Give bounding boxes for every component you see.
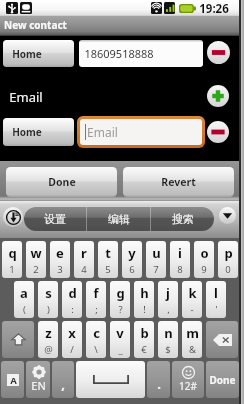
button[interactable]: Home: [3, 118, 74, 146]
button[interactable]: g: [110, 281, 130, 318]
button[interactable]: Done: [6, 167, 117, 197]
staticText: a: [20, 284, 28, 302]
staticText: !: [143, 303, 146, 316]
button[interactable]: Add email field: [207, 85, 229, 107]
staticText: :: [71, 303, 74, 316]
staticText: 1: [9, 263, 15, 276]
staticText: d: [68, 284, 77, 302]
button[interactable]: m: [182, 321, 202, 358]
button[interactable]: e: [50, 241, 70, 278]
staticText: ?: [118, 303, 123, 316]
button[interactable]: x: [62, 321, 82, 358]
button[interactable]: 18609518888: [79, 40, 203, 67]
staticText: s: [45, 284, 52, 302]
staticText: h: [140, 284, 149, 302]
staticText: t: [105, 244, 111, 262]
staticText: 19:26: [199, 1, 229, 17]
staticText: -: [190, 303, 194, 316]
button[interactable]: h: [134, 281, 154, 318]
button[interactable]: u: [146, 241, 166, 278]
button[interactable]: k: [182, 281, 202, 318]
button[interactable]: v: [110, 321, 130, 358]
staticText: g: [116, 284, 125, 302]
staticText: c: [93, 324, 100, 342]
button[interactable]: Done: [206, 361, 239, 398]
button[interactable]: [206, 321, 238, 358]
staticText: z: [45, 324, 52, 342]
button[interactable]: b: [134, 321, 154, 358]
button[interactable]: Hide keyboard: [3, 207, 23, 227]
staticText: ;: [95, 303, 98, 316]
staticText: 编辑: [108, 212, 130, 226]
button[interactable]: Email: [80, 119, 202, 145]
staticText: 18609518888: [84, 46, 154, 61]
button[interactable]: o: [194, 241, 214, 278]
button[interactable]: i: [170, 241, 190, 278]
staticText: ,: [61, 375, 65, 393]
button[interactable]: Home: [3, 40, 74, 67]
staticText: e: [56, 244, 64, 262]
button[interactable]: p: [218, 241, 238, 278]
staticText: x: [68, 324, 76, 342]
button[interactable]: w: [26, 241, 46, 278]
staticText: 搜索: [172, 212, 194, 226]
staticText: u: [152, 244, 161, 262]
button[interactable]: Remove field: [207, 41, 230, 64]
button[interactable]: ,: [52, 361, 74, 398]
staticText: 8: [177, 263, 183, 276]
staticText: ': [215, 303, 218, 316]
staticText: Email: [87, 124, 118, 140]
button[interactable]: f: [86, 281, 106, 318]
staticText: i: [178, 244, 182, 262]
staticText: q: [8, 244, 17, 262]
button[interactable]: s: [38, 281, 58, 318]
button[interactable]: n: [158, 321, 178, 358]
button[interactable]: EN: [26, 361, 50, 398]
staticText: \: [94, 343, 98, 356]
staticText: _: [118, 343, 123, 356]
staticText: f: [93, 284, 99, 302]
button[interactable]: [76, 361, 145, 398]
button[interactable]: r: [74, 241, 94, 278]
staticText: /: [70, 343, 74, 356]
staticText: 4: [81, 263, 87, 276]
button[interactable]: 设置: [24, 207, 86, 231]
button[interactable]: y: [122, 241, 142, 278]
staticText: &: [189, 343, 196, 356]
button[interactable]: 搜索: [151, 207, 214, 231]
button[interactable]: q: [2, 241, 22, 278]
staticText: .: [157, 375, 161, 393]
button[interactable]: l: [206, 281, 226, 318]
button[interactable]: z: [38, 321, 58, 358]
staticText: @: [44, 343, 53, 356]
staticText: y: [128, 244, 136, 262]
button[interactable]: a: [14, 281, 34, 318]
staticText: 设置: [44, 212, 66, 226]
staticText: 6: [129, 263, 135, 276]
button[interactable]: Revert: [123, 167, 234, 197]
staticText: 9: [201, 263, 207, 276]
staticText: ,: [167, 303, 170, 316]
button[interactable]: .: [147, 361, 170, 398]
staticText: 12#: [179, 379, 197, 393]
staticText: Done: [209, 373, 236, 387]
staticText: w: [30, 244, 42, 262]
staticText: m: [186, 324, 199, 342]
button[interactable]: c: [86, 321, 106, 358]
button[interactable]: 12#: [172, 361, 204, 398]
staticText: l: [214, 284, 218, 302]
staticText: Done: [48, 175, 76, 189]
staticText: €: [141, 343, 147, 356]
button[interactable]: t: [98, 241, 118, 278]
button[interactable]: Remove field: [207, 121, 229, 143]
button[interactable]: A: [1, 361, 24, 398]
button[interactable]: d: [62, 281, 82, 318]
staticText: 0: [225, 263, 231, 276]
button[interactable]: j: [158, 281, 178, 318]
button[interactable]: [2, 321, 34, 358]
staticText: (: [23, 303, 26, 316]
staticText: v: [116, 324, 124, 342]
staticText: A: [10, 374, 17, 386]
button[interactable]: 编辑: [87, 207, 150, 231]
button[interactable]: More input options: [219, 207, 236, 224]
